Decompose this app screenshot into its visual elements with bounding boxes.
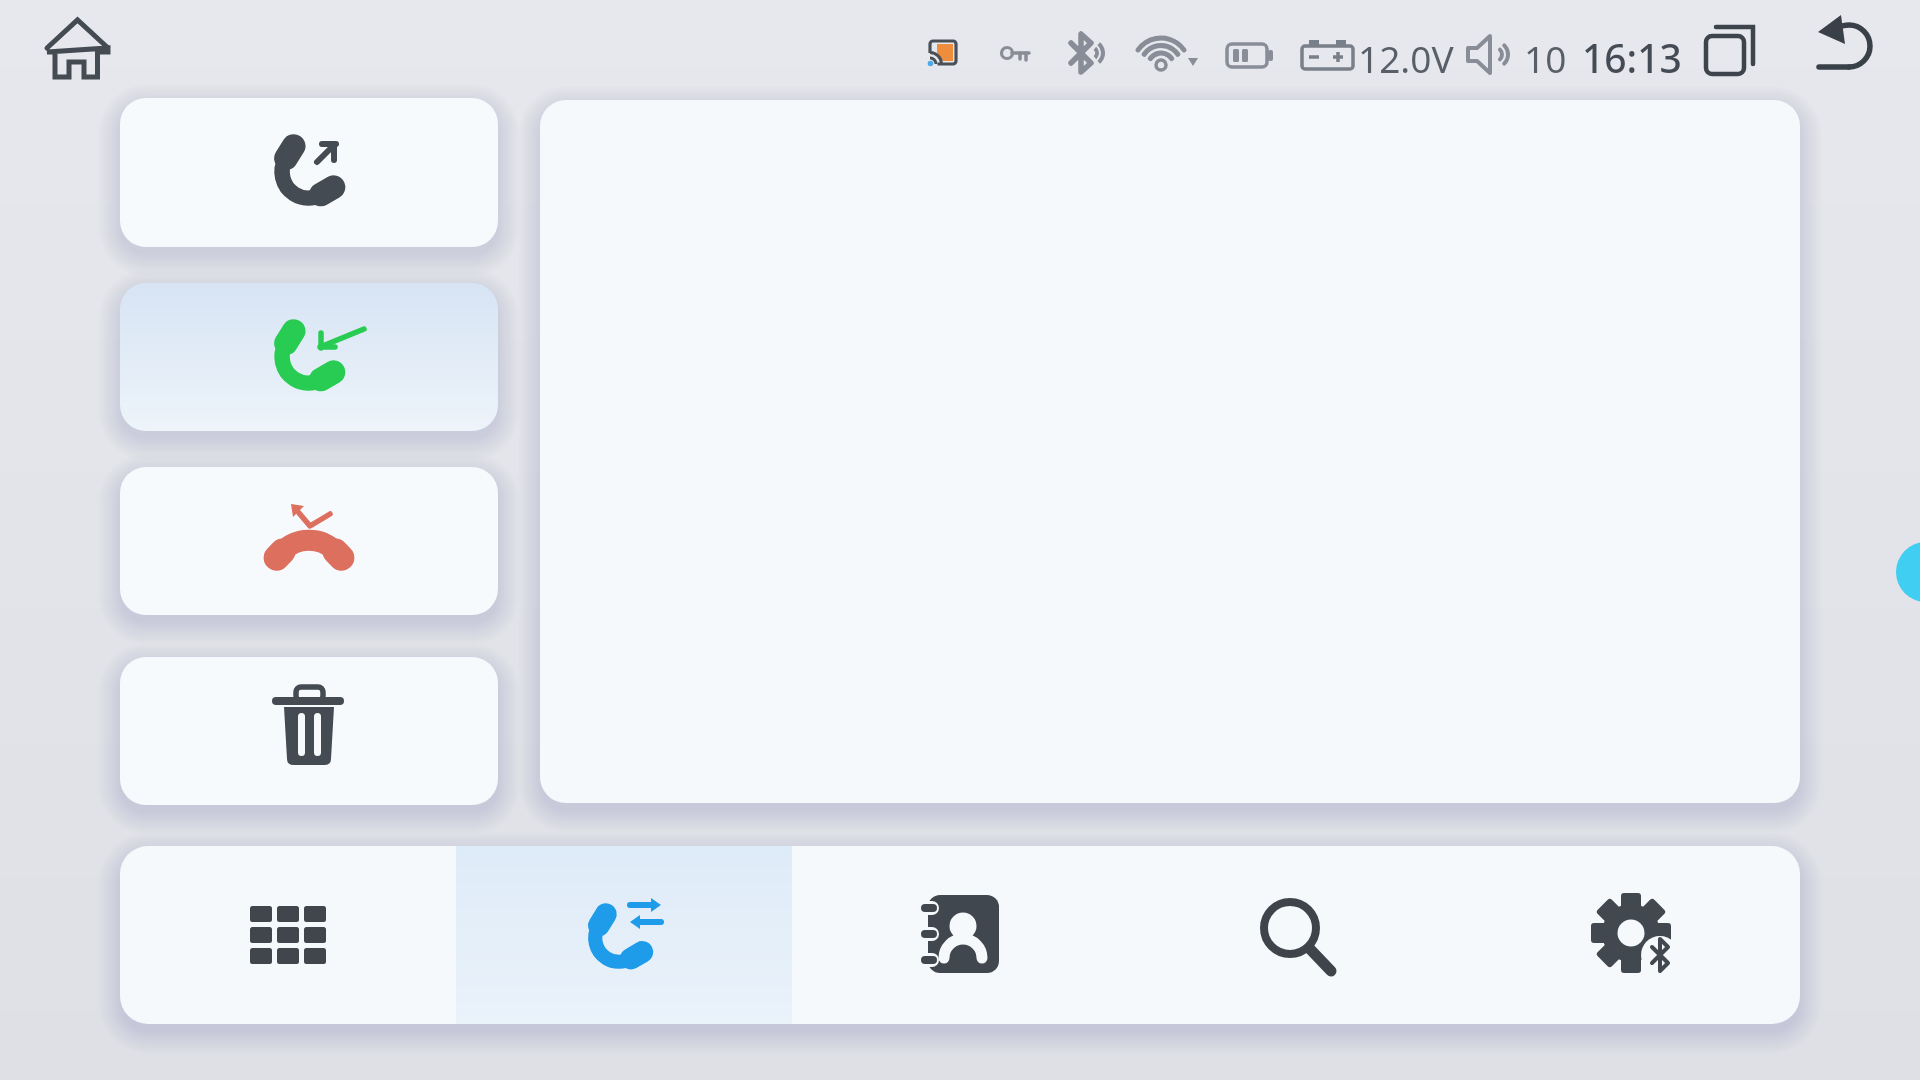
staticText: 16:13 [1582, 31, 1682, 84]
button[interactable] [120, 98, 498, 247]
button[interactable] [456, 846, 792, 1024]
button[interactable] [1464, 846, 1800, 1024]
button[interactable] [1692, 8, 1772, 88]
button[interactable] [36, 4, 120, 88]
button[interactable] [1128, 846, 1464, 1024]
button[interactable] [1805, 4, 1895, 88]
button[interactable] [792, 846, 1128, 1024]
button[interactable] [120, 846, 456, 1024]
staticText: 12.0V [1358, 33, 1454, 83]
button[interactable] [120, 657, 498, 805]
staticText: 10 [1524, 33, 1567, 83]
button[interactable] [120, 467, 498, 615]
button[interactable] [1896, 542, 1920, 602]
button[interactable] [120, 283, 498, 431]
